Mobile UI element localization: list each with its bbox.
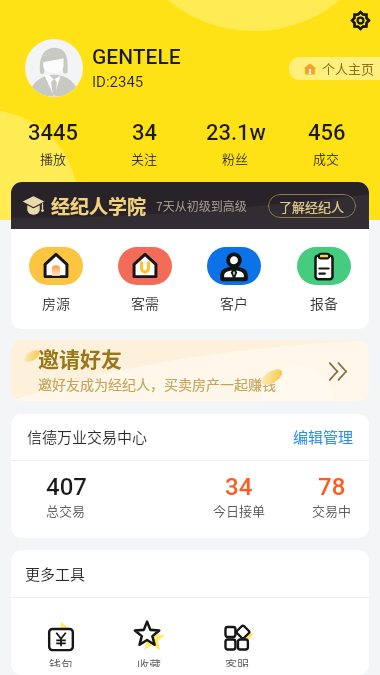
staticText: 信德万业交易中心	[27, 426, 148, 448]
button[interactable]: 了解经纪人	[268, 194, 356, 218]
staticText: 个人主页	[322, 59, 375, 78]
button[interactable]: 客服	[193, 620, 281, 667]
staticText: 播放	[40, 149, 67, 168]
button[interactable]: 报备	[279, 247, 369, 313]
button[interactable]: More	[323, 356, 353, 386]
staticText: 报备	[310, 293, 338, 313]
staticText: 78	[318, 473, 346, 501]
button[interactable]: 407	[11, 473, 121, 520]
button[interactable]: 3445	[8, 120, 99, 168]
button[interactable]: 房源	[11, 247, 100, 313]
staticText: 收藏	[137, 656, 162, 667]
staticText: 今日接单	[213, 501, 266, 520]
staticText: 了解经纪人	[279, 197, 345, 216]
staticText: 成交	[313, 149, 340, 168]
button[interactable]: 邀请好友	[11, 340, 369, 401]
staticText: GENTELE	[92, 45, 181, 70]
button[interactable]: 收藏	[105, 620, 193, 667]
staticText: 粉丝	[222, 149, 249, 168]
button[interactable]: Avatar	[25, 39, 83, 97]
button[interactable]: 456	[281, 120, 372, 168]
staticText: 交易中	[312, 501, 352, 520]
staticText: 23.1w	[206, 120, 266, 146]
button[interactable]: 经纪人学院	[11, 182, 369, 229]
button[interactable]: 78	[294, 473, 369, 520]
button[interactable]: 34	[184, 473, 294, 520]
staticText: 总交易	[46, 501, 86, 520]
staticText: 7天从初级到高级	[156, 197, 247, 214]
staticText: 邀好友成为经纪人，买卖房产一起赚钱	[38, 374, 276, 394]
button[interactable]: Settings	[350, 10, 371, 31]
button[interactable]: 34	[99, 120, 190, 168]
staticText: 编辑管理	[293, 426, 354, 448]
staticText: 456	[308, 120, 346, 146]
staticText: 经纪人学院	[51, 192, 147, 220]
staticText: 客需	[131, 293, 159, 313]
button[interactable]: 23.1w	[190, 120, 281, 168]
staticText: 房源	[42, 293, 70, 313]
staticText: 客户	[220, 293, 248, 313]
staticText: 3445	[28, 120, 79, 146]
staticText: 客服	[225, 656, 250, 667]
button[interactable]: 个人主页	[289, 57, 380, 80]
staticText: 关注	[131, 149, 158, 168]
staticText: 更多工具	[25, 563, 86, 585]
staticText: 34	[225, 473, 253, 501]
staticText: ID:2345	[92, 73, 144, 91]
staticText: 邀请好友	[38, 343, 122, 373]
button[interactable]: 编辑管理	[293, 426, 354, 448]
button[interactable]: 客需	[100, 247, 189, 313]
button[interactable]: 客户	[189, 247, 279, 313]
button[interactable]: 钱包	[17, 620, 105, 667]
staticText: 钱包	[49, 656, 74, 667]
staticText: 34	[132, 120, 158, 146]
staticText: 407	[46, 473, 87, 501]
